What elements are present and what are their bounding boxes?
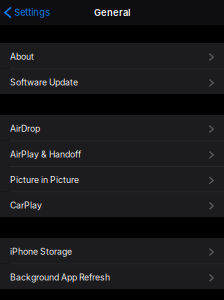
- button[interactable]: AirPlay & Handoff: [0, 140, 224, 166]
- staticText: CarPlay: [10, 200, 42, 211]
- button[interactable]: CarPlay: [0, 191, 224, 217]
- button[interactable]: Background App Refresh: [0, 263, 224, 289]
- staticText: Software Update: [10, 77, 78, 88]
- button[interactable]: AirDrop: [0, 115, 224, 140]
- staticText: Picture in Picture: [10, 175, 79, 185]
- staticText: Settings: [14, 7, 50, 18]
- staticText: AirDrop: [10, 123, 40, 134]
- button[interactable]: Software Update: [0, 68, 224, 94]
- button[interactable]: Picture in Picture: [0, 166, 224, 191]
- button[interactable]: iPhone Storage: [0, 238, 224, 263]
- staticText: About: [10, 51, 34, 62]
- button[interactable]: About: [0, 43, 224, 68]
- staticText: AirPlay & Handoff: [10, 149, 81, 160]
- staticText: iPhone Storage: [10, 246, 72, 257]
- staticText: General: [94, 7, 130, 18]
- button[interactable]: Settings: [0, 3, 54, 21]
- staticText: Background App Refresh: [10, 272, 110, 283]
